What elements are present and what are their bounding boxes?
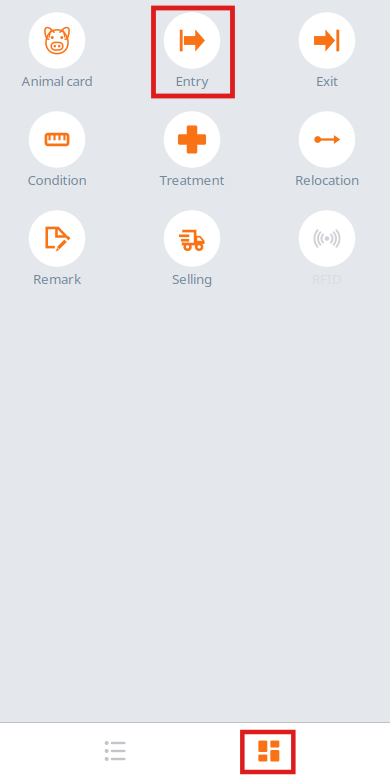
button[interactable]: Dashboard <box>230 723 307 779</box>
staticText: Condition <box>27 171 86 189</box>
staticText: Relocation <box>295 171 359 189</box>
button[interactable]: List <box>77 723 154 779</box>
button[interactable]: Remark <box>1 205 113 292</box>
button[interactable]: Entry <box>136 7 248 94</box>
staticText: Entry <box>175 72 208 90</box>
button[interactable]: Exit <box>271 7 383 94</box>
staticText: Exit <box>316 72 338 90</box>
button[interactable]: Selling <box>136 205 248 292</box>
button[interactable]: Relocation <box>271 106 383 193</box>
button[interactable]: RFID <box>271 205 383 292</box>
button[interactable]: Condition <box>1 106 113 193</box>
staticText: Treatment <box>159 171 224 189</box>
staticText: RFID <box>312 270 342 288</box>
staticText: Selling <box>172 270 212 288</box>
button[interactable]: Treatment <box>136 106 248 193</box>
staticText: Remark <box>33 270 81 288</box>
button[interactable]: Animal card <box>1 7 113 94</box>
staticText: Animal card <box>21 72 92 90</box>
